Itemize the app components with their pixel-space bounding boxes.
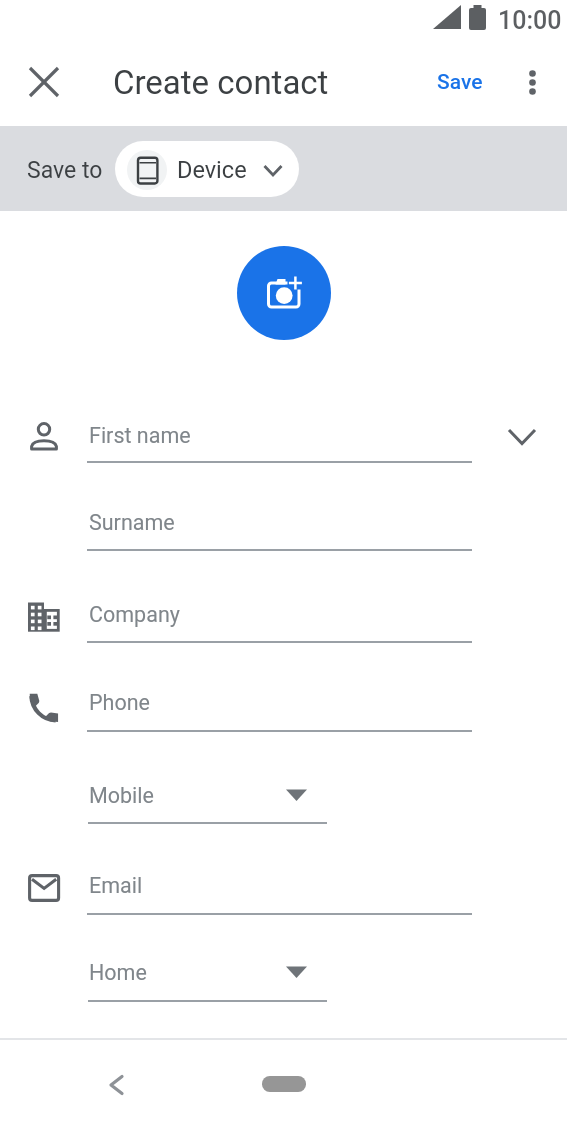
button[interactable]: Save [418,60,502,104]
staticText: Email [89,873,143,898]
staticText: Save to [27,157,103,184]
staticText: Device [177,156,247,184]
button[interactable] [262,1076,306,1092]
staticText: Home [89,960,147,985]
staticText: Phone [89,690,150,715]
button[interactable] [88,950,328,1002]
staticText: 10:00 [498,6,562,35]
button[interactable] [511,61,553,103]
button[interactable] [500,418,544,456]
button[interactable] [88,772,328,824]
button[interactable] [98,1067,134,1103]
button[interactable]: Device [115,141,299,197]
button[interactable] [0,492,567,552]
button[interactable] [0,672,567,735]
staticText: First name [89,423,191,448]
staticText: Create contact [113,63,329,102]
button[interactable] [0,580,567,643]
staticText: Company [89,602,180,627]
button[interactable] [23,61,65,103]
button[interactable] [0,858,567,920]
staticText: Mobile [89,783,154,808]
button[interactable] [237,246,331,340]
staticText: Surname [89,510,175,535]
button[interactable] [0,404,567,466]
staticText: Save [437,70,483,95]
